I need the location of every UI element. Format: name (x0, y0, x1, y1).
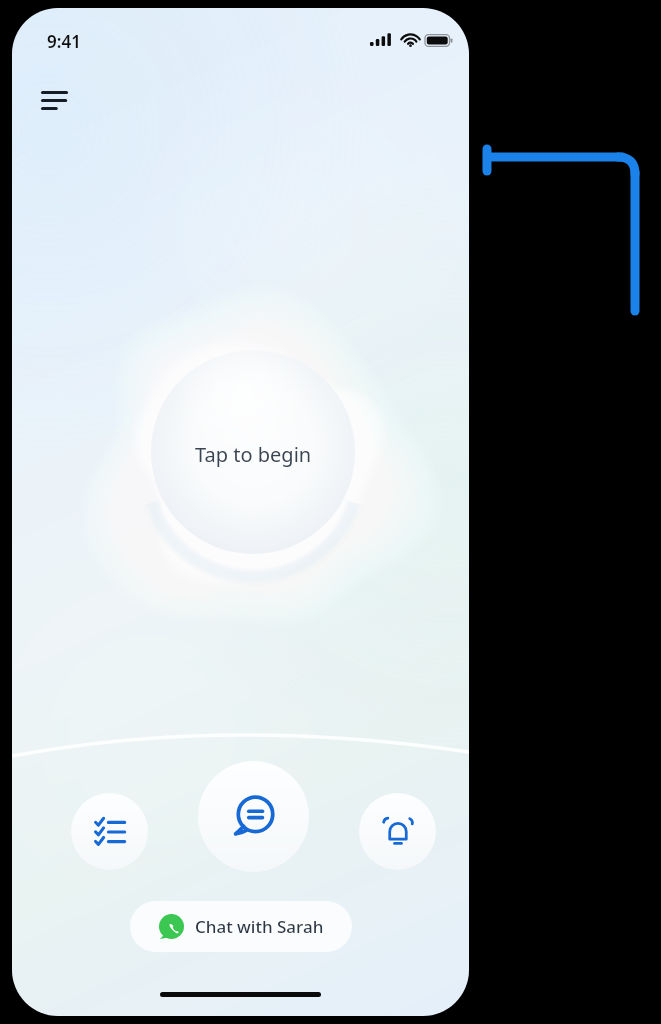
button[interactable]: Tap to begin (76, 286, 430, 630)
button[interactable]: Messages (198, 761, 309, 872)
button[interactable]: Tasks (71, 793, 148, 870)
staticText: Tap to begin (195, 441, 312, 468)
staticText: 9:41 (47, 30, 81, 53)
button[interactable]: Menu (30, 76, 78, 124)
staticText: Chat with Sarah (195, 915, 324, 938)
button[interactable]: Notifications (359, 793, 436, 870)
button[interactable]: Chat with Sarah (130, 901, 352, 952)
